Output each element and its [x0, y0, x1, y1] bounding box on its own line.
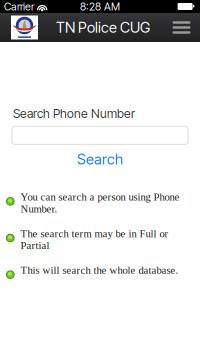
staticText: The search term may be in Full or Partia…: [21, 228, 169, 251]
staticText: You can search a person using Phone Numb…: [21, 191, 180, 215]
staticText: 8:28 AM: [80, 0, 120, 13]
button[interactable]: Menu: [166, 15, 196, 40]
button[interactable]: Search: [0, 149, 200, 169]
staticText: Search: [77, 150, 123, 168]
staticText: Carrier: [4, 0, 34, 13]
staticText: Search Phone Number: [13, 106, 135, 121]
staticText: TN Police CUG: [56, 19, 150, 36]
staticText: This will search the whole database.: [21, 264, 179, 276]
